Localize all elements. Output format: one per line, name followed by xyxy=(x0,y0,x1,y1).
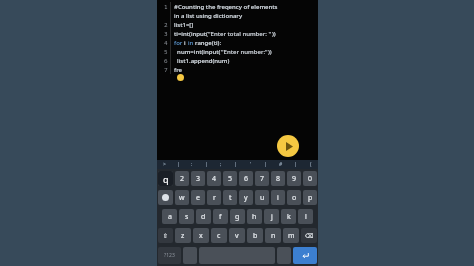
button[interactable]: 8 xyxy=(271,171,285,186)
button[interactable]: j xyxy=(264,209,279,224)
button[interactable]: d xyxy=(196,209,211,224)
button[interactable]: ⇧ xyxy=(158,228,173,243)
staticText: b xyxy=(253,231,258,241)
staticText: u xyxy=(260,193,265,203)
staticText: | xyxy=(177,161,180,168)
button[interactable]: # xyxy=(273,160,288,169)
button[interactable]: g xyxy=(230,209,245,224)
button[interactable]: z xyxy=(175,228,191,243)
staticText: 4 xyxy=(164,39,168,47)
staticText: ; xyxy=(220,161,222,168)
staticText: k xyxy=(287,212,291,222)
button[interactable]: 2 xyxy=(175,171,189,186)
staticText: 4 xyxy=(212,174,217,184)
staticText: range(ti): xyxy=(195,39,222,47)
staticText: 6 xyxy=(164,57,168,65)
button[interactable]: s xyxy=(179,209,194,224)
staticText: t xyxy=(229,193,232,203)
button[interactable]: h xyxy=(247,209,262,224)
button[interactable]: q xyxy=(158,171,173,186)
staticText: ( xyxy=(310,161,312,168)
button[interactable]: Enter xyxy=(293,247,317,264)
staticText: ?123 xyxy=(164,252,175,259)
staticText: s xyxy=(185,212,189,222)
staticText: r xyxy=(213,193,216,203)
button[interactable]: ( xyxy=(303,160,318,169)
button[interactable]: a xyxy=(162,209,177,224)
button[interactable]: 4 xyxy=(207,171,221,186)
staticText: 9 xyxy=(292,174,297,184)
button[interactable]: n xyxy=(265,228,281,243)
staticText: 5 xyxy=(164,48,168,56)
staticText: y xyxy=(244,193,248,203)
button[interactable]: r xyxy=(207,190,221,205)
staticText: m xyxy=(288,231,295,241)
button[interactable]: p xyxy=(303,190,317,205)
button[interactable]: 6 xyxy=(239,171,253,186)
staticText: d xyxy=(201,212,206,222)
button[interactable]: x xyxy=(193,228,209,243)
button[interactable]: Comma xyxy=(183,247,197,264)
button[interactable]: t xyxy=(223,190,237,205)
button[interactable]: y xyxy=(239,190,253,205)
button[interactable]: e xyxy=(191,190,205,205)
button[interactable]: | xyxy=(199,160,213,169)
button[interactable]: o xyxy=(287,190,301,205)
button[interactable]: 9 xyxy=(287,171,301,186)
button[interactable]: | xyxy=(228,160,243,169)
button[interactable]: c xyxy=(211,228,227,243)
button[interactable]: | xyxy=(258,160,273,169)
staticText: | xyxy=(294,161,297,168)
button[interactable]: k xyxy=(281,209,296,224)
staticText: | xyxy=(264,161,267,168)
button[interactable]: w xyxy=(175,190,189,205)
button[interactable]: v xyxy=(229,228,245,243)
staticText: "Enter total number: " xyxy=(208,30,272,38)
button[interactable]: b xyxy=(247,228,263,243)
button[interactable]: 5 xyxy=(223,171,237,186)
button[interactable]: ?123 xyxy=(158,247,181,264)
staticText: 1 xyxy=(164,3,168,11)
button[interactable]: m xyxy=(283,228,299,243)
staticText: 3 xyxy=(196,174,201,184)
staticText: for xyxy=(174,39,184,47)
staticText: ti=int(input( xyxy=(174,30,208,38)
button[interactable]: | xyxy=(171,160,185,169)
button[interactable]: | xyxy=(288,160,303,169)
staticText: a xyxy=(168,212,172,222)
staticText: 3 xyxy=(164,30,168,38)
button[interactable]: l xyxy=(298,209,313,224)
button[interactable]: ; xyxy=(213,160,228,169)
staticText: 6 xyxy=(244,174,249,184)
staticText: 8 xyxy=(276,174,281,184)
staticText: list1=[] xyxy=(174,21,194,29)
button[interactable]: 7 xyxy=(255,171,269,186)
staticText: )) xyxy=(268,48,272,56)
staticText: ⌫ xyxy=(305,232,314,239)
button[interactable]: 0 xyxy=(303,171,317,186)
staticText: g xyxy=(235,212,240,222)
button[interactable]: Period xyxy=(277,247,291,264)
staticText: 7 xyxy=(260,174,265,184)
button[interactable]: : xyxy=(185,160,199,169)
staticText: ⇧ xyxy=(163,232,169,239)
button[interactable]: 3 xyxy=(191,171,205,186)
staticText: i xyxy=(184,39,188,47)
button[interactable]: Run code xyxy=(277,135,299,157)
button[interactable]: > xyxy=(157,160,171,169)
staticText: 0 xyxy=(308,174,313,184)
button[interactable]: u xyxy=(255,190,269,205)
button[interactable]: i xyxy=(271,190,285,205)
staticText: l xyxy=(305,212,307,222)
button[interactable]: ⌫ xyxy=(301,228,317,243)
staticText: z xyxy=(181,231,185,241)
staticText: p xyxy=(308,193,313,203)
staticText: > xyxy=(163,161,166,168)
button[interactable]: ' xyxy=(243,160,258,169)
button[interactable]: f xyxy=(213,209,228,224)
staticText: i xyxy=(277,193,279,203)
staticText: in a list using dictionary xyxy=(174,12,243,20)
staticText: e xyxy=(196,193,200,203)
button[interactable] xyxy=(158,190,173,205)
